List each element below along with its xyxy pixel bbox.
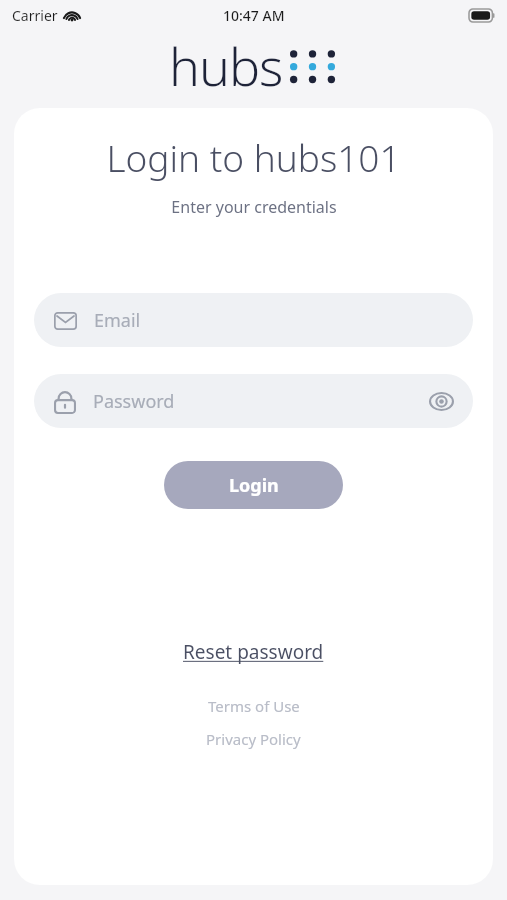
staticText: 10:47 AM (223, 6, 285, 25)
button[interactable]: Email (34, 293, 473, 347)
staticText: Reset password (183, 639, 324, 665)
staticText: Email (94, 308, 141, 333)
staticText: hubs (169, 30, 283, 98)
button[interactable]: Privacy Policy (200, 726, 307, 752)
button[interactable]: Login (164, 461, 343, 509)
staticText: Carrier (12, 6, 58, 25)
button[interactable]: Terms of Use (202, 693, 306, 719)
staticText: Login to hubs101 (106, 132, 401, 182)
button[interactable]: Show password (427, 387, 455, 415)
button[interactable]: Password (34, 374, 473, 428)
staticText: Password (93, 389, 175, 414)
staticText: Terms of Use (208, 696, 300, 716)
staticText: Login (229, 473, 279, 498)
button[interactable]: Reset password (177, 635, 330, 669)
staticText: Privacy Policy (206, 729, 301, 749)
staticText: Enter your credentials (171, 196, 337, 218)
